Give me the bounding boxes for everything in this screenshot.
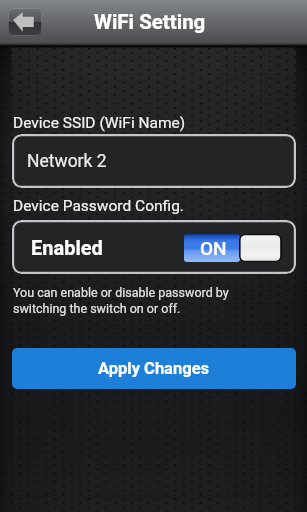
button[interactable]: Network 2: [12, 134, 296, 188]
staticText: Network 2: [27, 151, 107, 172]
button[interactable]: Apply Changes: [12, 348, 296, 389]
button[interactable]: Password enabled toggle: [184, 234, 282, 262]
staticText: Apply Changes: [98, 359, 210, 378]
button[interactable]: Back: [8, 8, 42, 36]
staticText: Device SSID (WiFi Name): [13, 114, 186, 132]
button[interactable]: Enabled: [12, 220, 296, 274]
staticText: Enabled: [31, 236, 103, 259]
staticText: ON: [200, 237, 227, 259]
staticText: Device Password Config.: [13, 197, 184, 215]
staticText: You can enable or disable password by sw…: [13, 285, 229, 316]
staticText: WiFi Setting: [94, 10, 206, 34]
